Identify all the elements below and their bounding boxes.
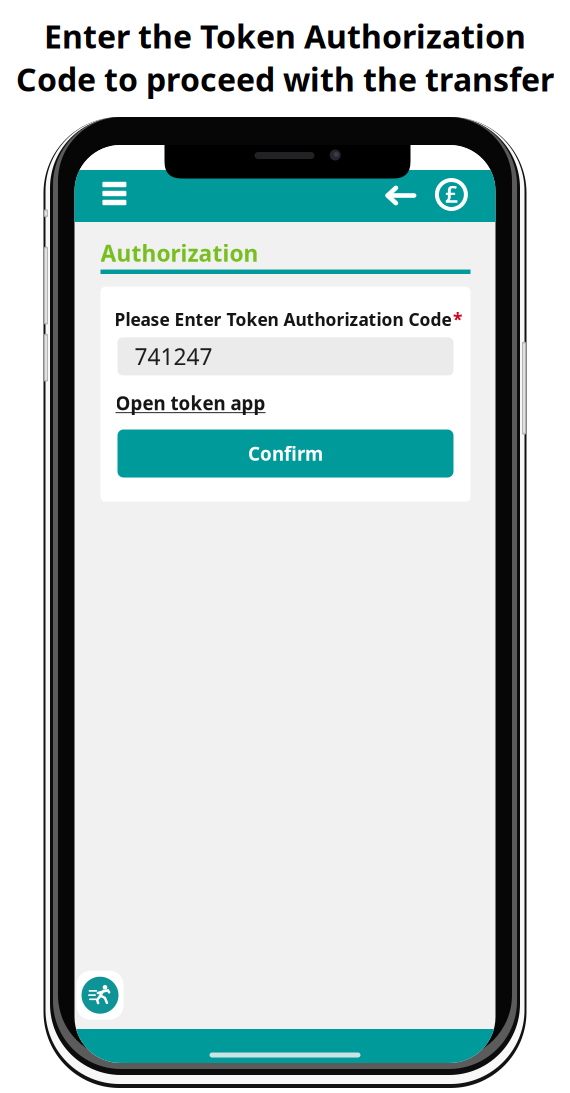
staticText: Confirm	[248, 441, 323, 466]
staticText: Please Enter Token Authorization Code	[114, 308, 451, 331]
button[interactable]: Menu	[93, 172, 135, 214]
button[interactable]: Back	[378, 174, 422, 216]
staticText: £	[445, 179, 458, 209]
button[interactable]: Open token app	[115, 391, 265, 415]
staticText: *	[453, 308, 462, 331]
staticText: Code to proceed with the transfer	[16, 58, 554, 100]
button[interactable]: Confirm	[117, 429, 453, 477]
button[interactable]: Accessibility options	[76, 971, 123, 1020]
staticText: Open token app	[115, 391, 265, 415]
button[interactable]: Account balance	[430, 173, 472, 215]
staticText: Enter the Token Authorization	[44, 15, 526, 57]
staticText: Authorization	[100, 238, 258, 268]
staticText: 741247	[134, 341, 212, 371]
